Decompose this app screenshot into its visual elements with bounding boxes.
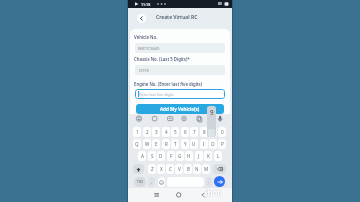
button[interactable]: F [167, 151, 175, 161]
button[interactable]: Enter last five digits [135, 89, 225, 99]
staticText: 80 [218, 2, 222, 6]
button[interactable]: WB77C6645 [135, 43, 225, 53]
button[interactable]: 5 [171, 127, 179, 137]
staticText: K [207, 153, 210, 159]
staticText: B [187, 166, 190, 172]
staticText: 4 [165, 129, 168, 135]
button[interactable]: H [185, 151, 193, 161]
button[interactable]: . [206, 177, 212, 187]
button[interactable]: 6 [181, 127, 189, 137]
staticText: 7 [193, 129, 196, 135]
button[interactable]: 2 [143, 127, 151, 137]
button[interactable] [214, 176, 225, 187]
button[interactable]: J [195, 151, 203, 161]
staticText: Q [135, 141, 139, 147]
button[interactable] [158, 177, 165, 187]
button[interactable]: 0 [218, 127, 226, 137]
button[interactable]: Add My Vehicle(s) [136, 104, 224, 114]
button[interactable]: 9 [209, 127, 217, 137]
staticText: T [174, 141, 177, 147]
staticText: F [170, 153, 173, 159]
staticText: WB77C6645 [138, 46, 160, 51]
button[interactable]: V [175, 164, 183, 174]
staticText: Enter last five digits [139, 92, 174, 97]
staticText: , [151, 179, 153, 185]
button[interactable]: S [148, 151, 156, 161]
staticText: I [203, 141, 205, 147]
button[interactable]: G [176, 151, 184, 161]
button[interactable]: ?123 [134, 177, 146, 187]
staticText: J [198, 153, 200, 159]
staticText: Y [184, 141, 187, 147]
button[interactable]: N [193, 164, 201, 174]
staticText: R [165, 141, 168, 147]
staticText: Z [151, 166, 154, 172]
staticText: Shot [203, 187, 221, 198]
button[interactable]: I [200, 139, 208, 149]
button[interactable]: R [162, 139, 170, 149]
staticText: G [178, 153, 182, 159]
staticText: Create Virtual RC [156, 14, 198, 21]
button[interactable]: C [166, 164, 174, 174]
staticText: 5 [174, 129, 177, 135]
staticText: E [155, 141, 158, 147]
button[interactable]: T [171, 139, 179, 149]
staticText: Chassis No. (Last 5 Digits)* [134, 56, 190, 62]
staticText: O [211, 141, 215, 147]
button[interactable] [133, 164, 144, 174]
staticText: 2 [146, 129, 149, 135]
button[interactable]: W [143, 139, 151, 149]
button[interactable]: A [138, 151, 146, 161]
staticText: . [208, 179, 210, 185]
staticText: Add My Vehicle(s) [160, 106, 200, 112]
button[interactable]: 4 [162, 127, 170, 137]
staticText: W [145, 141, 150, 147]
staticText: N [195, 166, 199, 172]
staticText: 6 [184, 129, 187, 135]
button[interactable]: K [204, 151, 212, 161]
button[interactable] [137, 14, 146, 23]
staticText: 11:18 [141, 2, 151, 7]
button[interactable]: 7 [190, 127, 198, 137]
button[interactable]: , [148, 177, 155, 187]
staticText: X [160, 166, 163, 172]
staticText: C [169, 166, 172, 172]
button[interactable]: L [214, 151, 222, 161]
button[interactable]: M [202, 164, 210, 174]
button[interactable]: U [190, 139, 198, 149]
button[interactable]: 13759 [135, 65, 225, 75]
staticText: 8 [203, 129, 206, 135]
button[interactable]: 3 [152, 127, 160, 137]
staticText: P [221, 141, 224, 147]
staticText: H [187, 153, 191, 159]
staticText: M [204, 166, 209, 172]
staticText: L [217, 153, 220, 159]
staticText: Engine No. (Enter last five digits) [134, 81, 203, 87]
staticText: V [178, 166, 181, 172]
button[interactable]: Z [148, 164, 156, 174]
staticText: Vehicle No. [134, 34, 158, 40]
button[interactable]: X [157, 164, 165, 174]
staticText: 9 [210, 108, 214, 116]
button[interactable]: P [218, 139, 226, 149]
staticText: D [159, 153, 163, 159]
button[interactable]: B [184, 164, 192, 174]
staticText: 1 [136, 129, 139, 135]
staticText: 13759 [138, 68, 149, 73]
staticText: ?123 [137, 180, 143, 184]
button[interactable]: O [209, 139, 217, 149]
staticText: U [192, 141, 196, 147]
button[interactable]: Q [133, 139, 141, 149]
button[interactable]: D [157, 151, 165, 161]
button[interactable]: 1 [133, 127, 141, 137]
staticText: S [151, 153, 154, 159]
staticText: 0 [221, 129, 224, 135]
button[interactable] [213, 164, 226, 174]
staticText: A [141, 153, 144, 159]
button[interactable]: 8 [200, 127, 208, 137]
staticText: 3 [155, 129, 158, 135]
button[interactable]: E [152, 139, 160, 149]
button[interactable]: Y [181, 139, 189, 149]
